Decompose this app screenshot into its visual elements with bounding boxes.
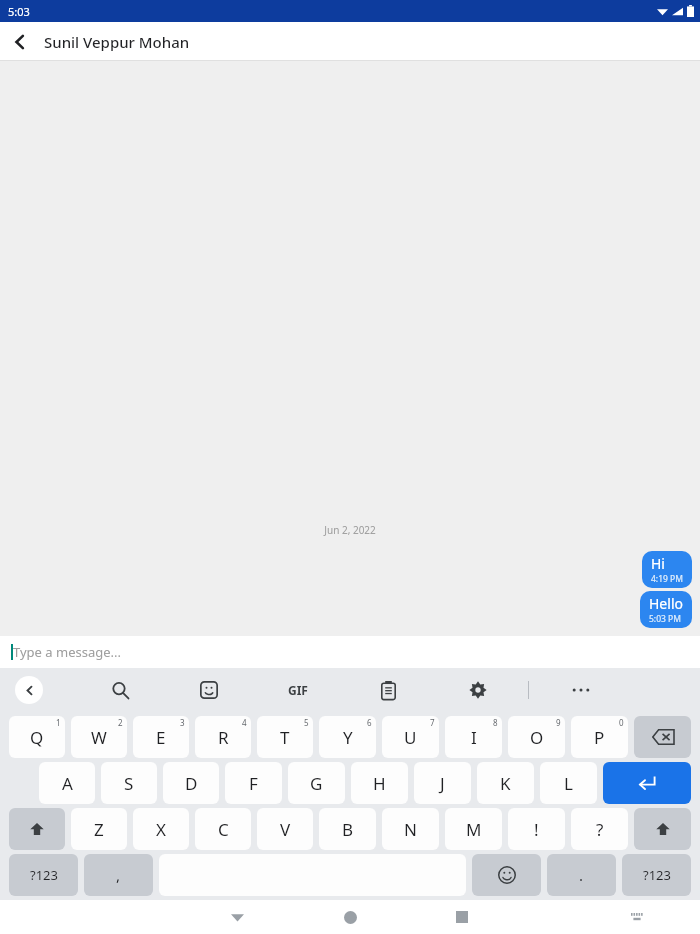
button[interactable]: F — [225, 762, 282, 804]
button[interactable]: Stickers — [190, 671, 228, 709]
button[interactable]: C — [195, 808, 251, 850]
button[interactable]: X — [133, 808, 189, 850]
staticText: T — [280, 726, 290, 749]
button[interactable]: R — [195, 716, 251, 758]
button[interactable]: Search — [101, 671, 139, 709]
staticText: Jun 2, 2022 — [0, 523, 700, 537]
button[interactable]: P — [571, 716, 628, 758]
staticText: 6 — [367, 717, 372, 728]
button[interactable]: O — [508, 716, 565, 758]
staticText: R — [218, 726, 229, 749]
button[interactable]: More options — [562, 671, 600, 709]
staticText: E — [156, 726, 166, 749]
button[interactable]: A — [39, 762, 95, 804]
button[interactable]: W — [71, 716, 127, 758]
staticText: D — [185, 772, 198, 795]
staticText: 9 — [556, 717, 561, 728]
button[interactable]: Back — [0, 22, 40, 61]
button[interactable]: T — [257, 716, 313, 758]
staticText: 8 — [493, 717, 498, 728]
staticText: C — [218, 818, 229, 841]
button[interactable]: Back — [220, 900, 254, 934]
staticText: 5 — [304, 717, 309, 728]
button[interactable]: Enter — [603, 762, 691, 804]
staticText: ?123 — [643, 866, 671, 884]
button[interactable]: M — [445, 808, 502, 850]
staticText: G — [310, 772, 323, 795]
button[interactable]: L — [540, 762, 597, 804]
button[interactable]: Hello — [640, 591, 692, 628]
button[interactable]: Recents — [445, 900, 479, 934]
button[interactable]: B — [319, 808, 376, 850]
button[interactable]: H — [351, 762, 408, 804]
button[interactable]: . — [547, 854, 616, 896]
button[interactable]: Q — [9, 716, 65, 758]
staticText: U — [404, 726, 417, 749]
staticText: 5:03 — [8, 4, 30, 19]
button[interactable]: E — [133, 716, 189, 758]
button[interactable]: N — [382, 808, 439, 850]
button[interactable]: J — [414, 762, 471, 804]
staticText: X — [156, 818, 166, 841]
button[interactable]: U — [382, 716, 439, 758]
staticText: 3 — [180, 717, 185, 728]
staticText: . — [579, 865, 584, 885]
button[interactable]: S — [101, 762, 157, 804]
button[interactable]: D — [163, 762, 219, 804]
button[interactable]: Y — [319, 716, 376, 758]
button[interactable]: Type a message... — [0, 636, 700, 668]
button[interactable]: ?123 — [9, 854, 78, 896]
staticText: 1 — [56, 717, 61, 728]
staticText: Hello — [649, 594, 683, 613]
button[interactable]: Shift — [634, 808, 691, 850]
button[interactable]: ! — [508, 808, 565, 850]
button[interactable]: Clipboard — [369, 671, 407, 709]
button[interactable]: , — [84, 854, 153, 896]
button[interactable]: V — [257, 808, 313, 850]
staticText: Q — [30, 726, 44, 749]
staticText: Z — [94, 818, 104, 841]
staticText: ?123 — [30, 866, 58, 884]
staticText: J — [440, 772, 445, 795]
button[interactable]: Z — [71, 808, 127, 850]
staticText: 2 — [118, 717, 123, 728]
staticText: S — [124, 772, 134, 795]
button[interactable]: Shift — [9, 808, 65, 850]
staticText: ! — [534, 818, 539, 841]
button[interactable]: Keyboard — [620, 900, 654, 934]
button[interactable]: G — [288, 762, 345, 804]
staticText: 0 — [619, 717, 624, 728]
staticText: F — [249, 772, 258, 795]
staticText: Type a message... — [13, 643, 121, 661]
button[interactable]: ? — [571, 808, 628, 850]
staticText: W — [91, 726, 107, 749]
button[interactable]: GIF — [279, 671, 317, 709]
staticText: Hi — [651, 554, 665, 573]
button[interactable]: ?123 — [622, 854, 691, 896]
button[interactable]: Hi — [642, 551, 692, 588]
staticText: N — [404, 818, 417, 841]
staticText: L — [564, 772, 573, 795]
staticText: 4:19 PM — [651, 573, 683, 585]
button[interactable]: Backspace — [634, 716, 691, 758]
button[interactable]: Collapse — [15, 676, 43, 704]
staticText: GIF — [288, 682, 308, 698]
button[interactable]: K — [477, 762, 534, 804]
staticText: O — [530, 726, 544, 749]
staticText: M — [466, 818, 482, 841]
staticText: B — [342, 818, 354, 841]
staticText: 5:03 PM — [649, 613, 681, 625]
staticText: V — [280, 818, 291, 841]
staticText: Sunil Veppur Mohan — [44, 32, 190, 52]
staticText: I — [471, 726, 477, 749]
staticText: 4 — [242, 717, 247, 728]
button[interactable]: Emoji — [472, 854, 541, 896]
staticText: K — [500, 772, 511, 795]
staticText: , — [116, 865, 121, 885]
button[interactable]: Settings — [459, 671, 497, 709]
staticText: 7 — [430, 717, 435, 728]
button[interactable]: Home — [333, 900, 367, 934]
staticText: H — [373, 772, 386, 795]
button[interactable]: I — [445, 716, 502, 758]
